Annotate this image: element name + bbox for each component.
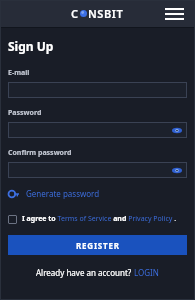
button[interactable]: REGISTER [8,235,187,255]
button[interactable]: Show password [8,162,187,178]
button[interactable]: Show password [171,124,183,136]
button[interactable]: Show password [171,164,183,176]
staticText: Password [8,108,42,118]
button[interactable]: C [71,6,124,21]
button[interactable]: Already have an account? [8,267,187,278]
staticText: Sign Up [8,38,54,54]
staticText: LOGIN [134,267,159,278]
button[interactable] [8,82,187,98]
staticText: Generate password [26,188,100,199]
staticText: C [71,6,79,21]
button[interactable]: Generate password [8,187,100,200]
staticText: I agree to Terms of Service and Privacy … [22,214,177,224]
button[interactable]: I agree to Terms of Service and Privacy … [8,214,187,224]
staticText: NSBIT [88,6,124,21]
staticText: Already have an account? [36,267,134,278]
staticText: Confirm password [8,148,72,158]
staticText: REGISTER [76,240,120,251]
staticText: E-mail [8,68,30,78]
button[interactable]: Show password [8,122,187,138]
button[interactable]: Open menu [163,3,185,25]
